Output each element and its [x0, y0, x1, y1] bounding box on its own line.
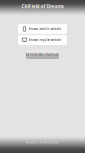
staticText: CitiField of Dreams [21, 3, 63, 10]
button[interactable]: Browse mobile website [18, 24, 67, 34]
staticText: powered by MobileSite [26, 141, 59, 144]
staticText: Browse mobile website [28, 27, 61, 31]
button[interactable]: Browse regular website [18, 35, 67, 45]
staticText: Remember my choice [30, 53, 59, 56]
button[interactable]: Remember my choice [26, 50, 59, 59]
staticText: Browse regular website [28, 38, 61, 42]
